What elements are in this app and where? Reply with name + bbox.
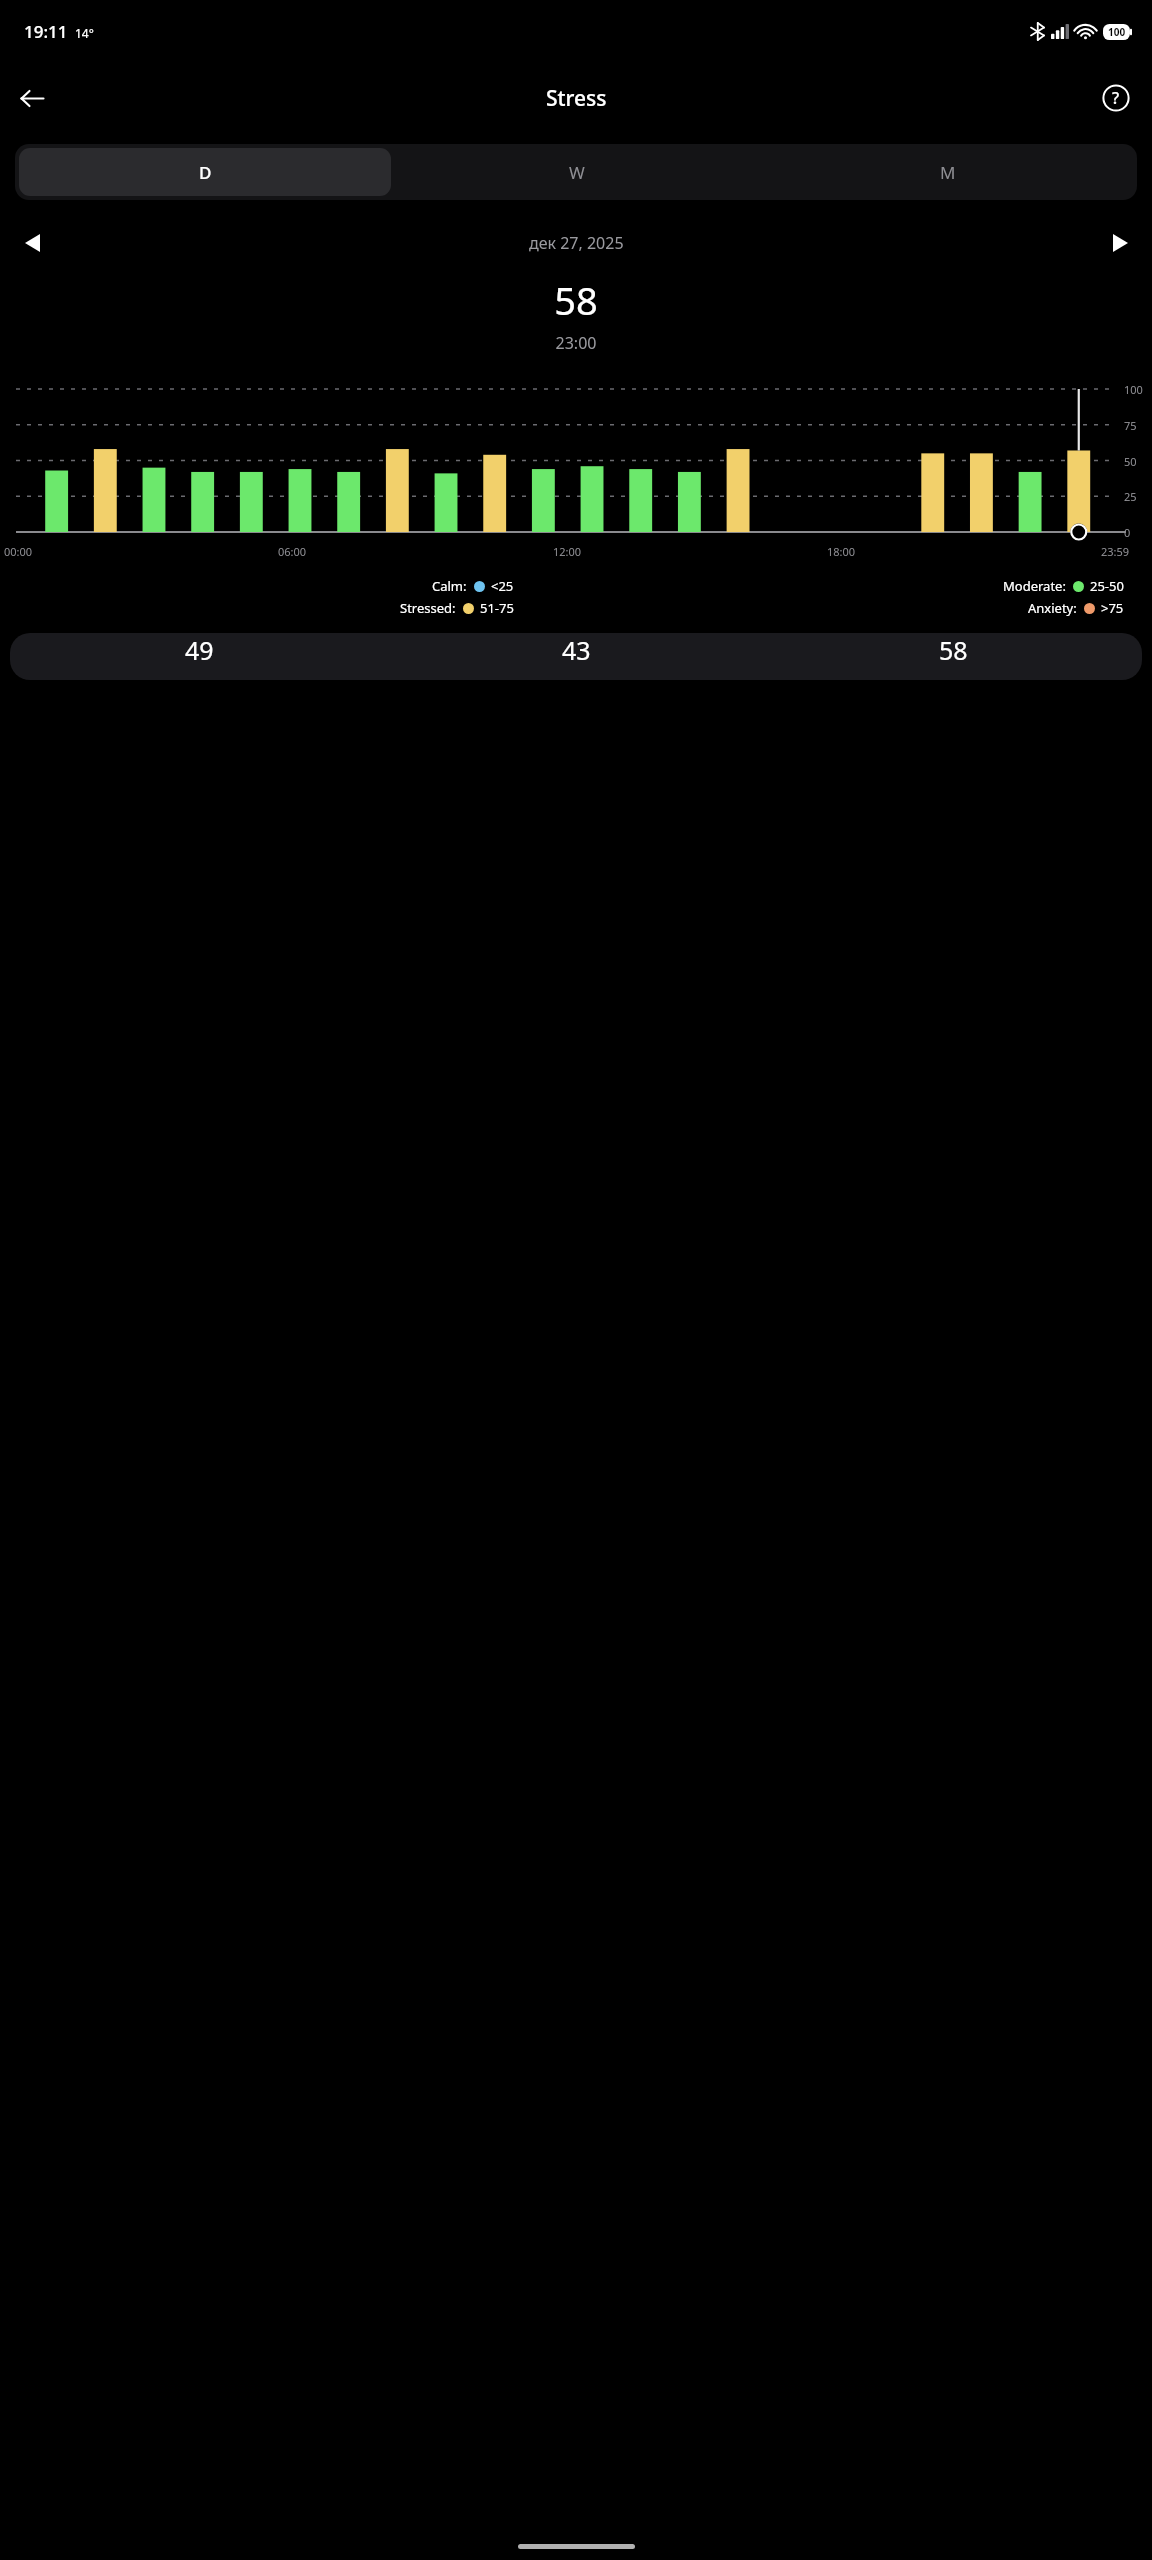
staticText: 51-75 [480, 599, 514, 617]
staticText: 49 [185, 633, 214, 667]
staticText: 100 [1124, 382, 1143, 397]
staticText: 58 [0, 274, 1152, 326]
staticText: W [569, 161, 585, 184]
staticText: 23:59 [1101, 544, 1130, 559]
staticText: Calm: [432, 577, 467, 595]
button[interactable]: Help [1092, 74, 1140, 122]
staticText: 14° [75, 25, 94, 41]
staticText: Moderate: [1003, 577, 1066, 595]
staticText: 25 [1124, 489, 1137, 504]
staticText: 0 [1124, 525, 1131, 540]
staticText: 19:11 [24, 20, 68, 43]
staticText: 58 [939, 633, 968, 667]
staticText: дек 27, 2025 [529, 232, 624, 254]
staticText: 25-50 [1090, 577, 1124, 595]
button[interactable]: W [391, 148, 762, 196]
staticText: D [199, 161, 212, 184]
staticText: 23:00 [0, 332, 1152, 354]
staticText: 06:00 [278, 544, 307, 559]
staticText: M [940, 161, 956, 184]
button[interactable]: M [762, 148, 1133, 196]
staticText: 12:00 [553, 544, 582, 559]
button[interactable]: D [19, 148, 391, 196]
staticText: 43 [562, 633, 591, 667]
staticText: 18:00 [827, 544, 856, 559]
staticText: >75 [1101, 599, 1124, 617]
staticText: 00:00 [4, 544, 33, 559]
button[interactable]: 49 [10, 633, 1142, 680]
button[interactable]: Next day [1098, 222, 1142, 264]
staticText: 75 [1124, 418, 1137, 433]
staticText: 100 [1108, 25, 1126, 39]
staticText: Stressed: [400, 599, 456, 617]
button[interactable]: Previous day [10, 222, 54, 264]
staticText: 50 [1124, 454, 1137, 469]
staticText: ? [1112, 87, 1120, 109]
staticText: Stress [546, 84, 607, 113]
staticText: Anxiety: [1028, 599, 1077, 617]
button[interactable]: Back [8, 74, 56, 122]
staticText: <25 [491, 577, 514, 595]
